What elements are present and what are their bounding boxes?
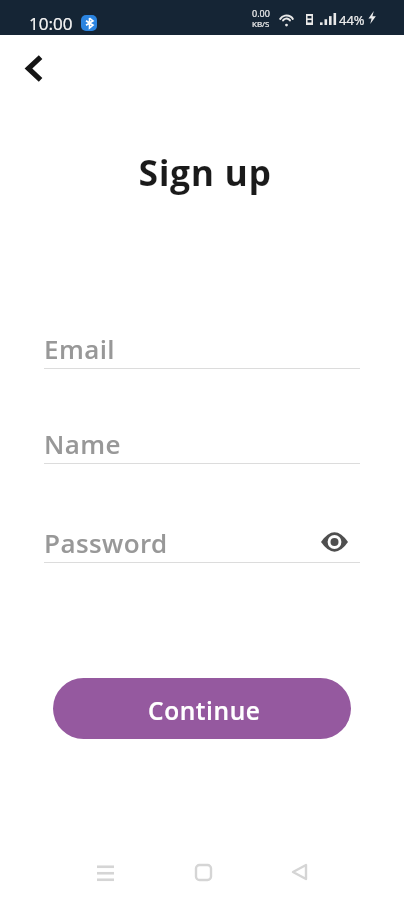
- button[interactable]: Back: [275, 848, 323, 896]
- button[interactable]: Home: [179, 848, 227, 896]
- staticText: KB/S: [252, 18, 270, 29]
- staticText: Name: [44, 426, 121, 461]
- button[interactable]: Show password: [314, 523, 354, 560]
- button[interactable]: Recent apps: [81, 848, 129, 896]
- staticText: Sign up: [3, 148, 404, 196]
- staticText: Email: [44, 331, 115, 366]
- staticText: 44%: [339, 11, 365, 29]
- button[interactable]: Continue: [53, 678, 351, 739]
- staticText: 10:00: [29, 12, 73, 35]
- staticText: 0.00: [252, 7, 270, 19]
- button[interactable]: Back: [9, 44, 57, 92]
- staticText: Continue: [148, 694, 261, 727]
- staticText: Password: [44, 525, 168, 560]
